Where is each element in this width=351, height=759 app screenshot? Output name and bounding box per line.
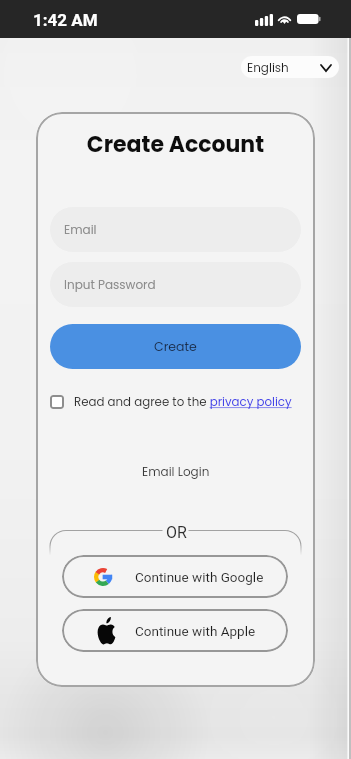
button[interactable]: Email xyxy=(50,207,301,252)
button[interactable]: Input Password xyxy=(50,262,301,307)
staticText: Create Account xyxy=(36,129,315,160)
staticText: Input Password xyxy=(64,276,156,293)
button[interactable]: Email Login xyxy=(50,459,301,483)
button[interactable]: English xyxy=(241,56,339,78)
staticText: 1:42 AM xyxy=(33,10,98,30)
button[interactable]: Continue with Apple xyxy=(62,609,288,652)
staticText: Create xyxy=(154,338,197,355)
staticText: English xyxy=(247,59,289,76)
staticText: Email Login xyxy=(142,463,210,480)
button[interactable]: Read and agree to the privacy policy xyxy=(50,393,301,411)
button[interactable]: Continue with Google xyxy=(62,555,288,598)
staticText: OR xyxy=(166,523,187,542)
staticText: Email xyxy=(64,221,97,238)
staticText: Continue with Google xyxy=(135,569,264,585)
staticText: Continue with Apple xyxy=(135,623,256,639)
staticText: Read and agree to the privacy policy xyxy=(74,394,292,411)
button[interactable]: Create xyxy=(50,324,301,369)
